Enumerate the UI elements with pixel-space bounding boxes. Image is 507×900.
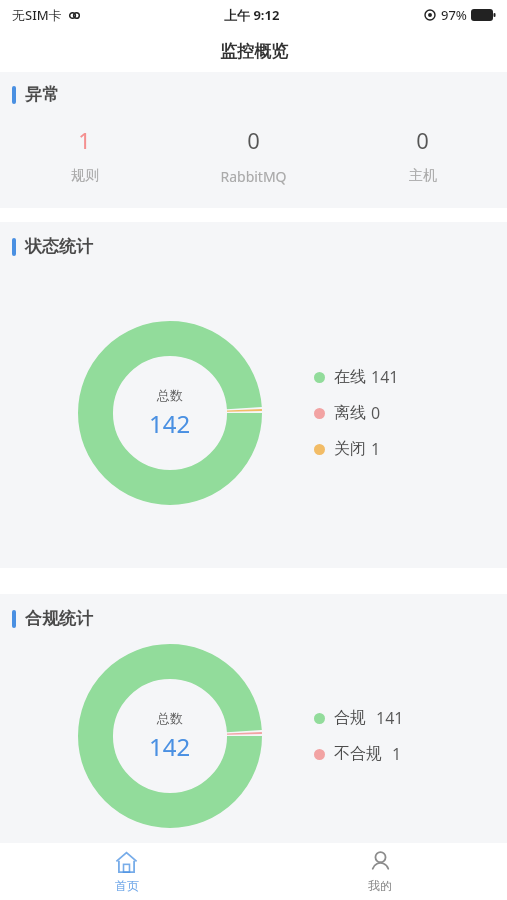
button[interactable]: 首页 [0,843,253,900]
staticText: 关闭 [334,439,366,459]
staticText: 监控概览 [220,41,288,62]
staticText: 在线 [334,367,366,387]
staticText: 0 [371,402,381,424]
button[interactable]: 我的 [253,843,507,900]
staticText: 离线 [334,403,366,423]
staticText: 合规统计 [25,608,93,629]
button[interactable]: 0 [338,125,507,185]
staticText: 状态统计 [25,236,93,257]
staticText: 1 [78,125,91,155]
staticText: 我的 [368,878,392,893]
staticText: 首页 [115,878,139,893]
staticText: 上午 9:12 [224,6,280,24]
staticText: 主机 [409,167,437,185]
staticText: 总数 [157,387,183,403]
staticText: 规则 [71,167,99,185]
staticText: 141 [376,707,404,729]
button[interactable]: 1 [0,125,169,185]
staticText: 142 [149,407,191,440]
staticText: 0 [247,125,260,155]
staticText: 0 [416,125,429,155]
staticText: RabbitMQ [220,167,287,186]
staticText: 97% [441,6,467,24]
staticText: 1 [392,743,402,765]
staticText: 141 [371,366,399,388]
staticText: 合规 [334,708,366,728]
staticText: 142 [149,730,191,763]
staticText: 异常 [25,84,59,105]
staticText: 总数 [157,710,183,726]
staticText: 不合规 [334,744,382,764]
staticText: 无SIM卡 [12,6,62,24]
button[interactable]: 0 [169,125,338,186]
staticText: 1 [371,438,381,460]
